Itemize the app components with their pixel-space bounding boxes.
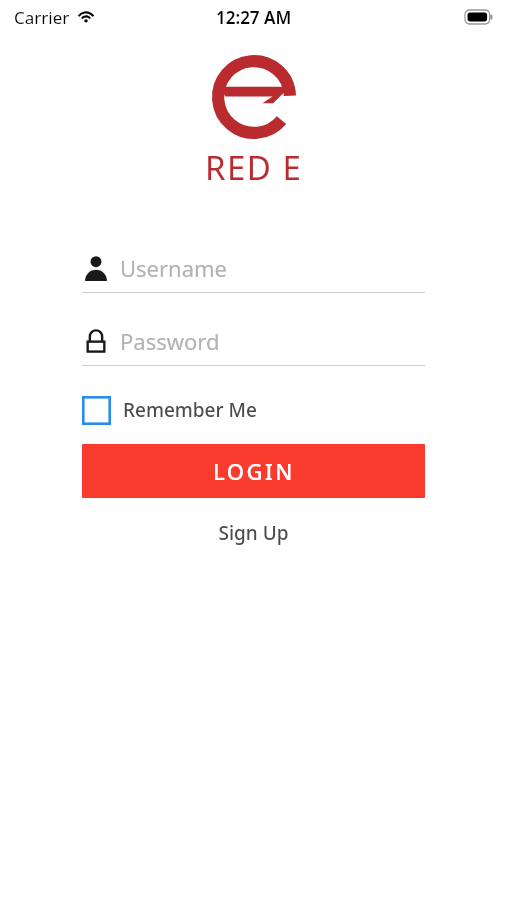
button[interactable]: Sign Up <box>202 516 305 550</box>
staticText: Carrier <box>14 6 70 29</box>
button[interactable]: LOGIN <box>82 444 425 498</box>
button[interactable]: Remember Me <box>82 388 257 432</box>
staticText: 12:27 AM <box>216 6 292 29</box>
staticText: Sign Up <box>218 520 289 546</box>
button[interactable]: Username <box>82 248 425 293</box>
staticText: RED E <box>205 145 303 190</box>
button[interactable]: Password <box>82 321 425 366</box>
staticText: Password <box>120 326 220 356</box>
staticText: LOGIN <box>213 456 295 486</box>
staticText: Remember Me <box>123 397 257 423</box>
staticText: Username <box>120 253 228 283</box>
